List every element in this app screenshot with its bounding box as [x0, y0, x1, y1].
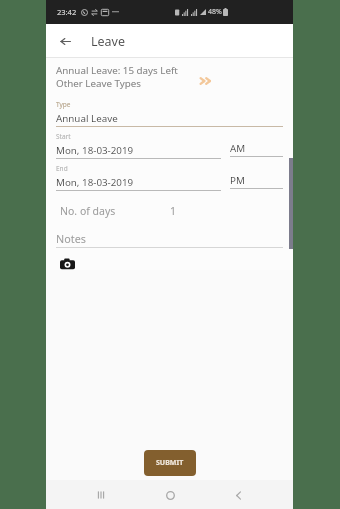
staticText: AM — [230, 142, 246, 155]
staticText: Type — [56, 100, 71, 109]
button[interactable]: Notes — [56, 231, 283, 248]
staticText: 48% — [208, 7, 222, 17]
staticText: Notes — [56, 231, 86, 246]
staticText: Annual Leave: 15 days Left — [56, 64, 178, 77]
button[interactable]: PM — [230, 164, 283, 189]
staticText: Annual Leave — [56, 112, 118, 125]
staticText: Leave — [91, 33, 126, 50]
staticText: No. of days — [60, 204, 116, 218]
staticText: 1 — [170, 204, 177, 218]
button[interactable]: Attach photo — [59, 256, 76, 273]
button[interactable]: End — [56, 164, 221, 191]
button[interactable]: Recents — [88, 482, 114, 508]
staticText: PM — [230, 174, 245, 187]
staticText: Mon, 18-03-2019 — [56, 144, 134, 157]
staticText: Start — [56, 132, 71, 141]
staticText: 23:42 — [57, 7, 77, 17]
button[interactable]: Other leave types — [199, 77, 213, 85]
button[interactable]: SUBMIT — [144, 450, 196, 476]
button[interactable]: Start — [56, 132, 221, 159]
button[interactable]: Type — [56, 100, 283, 127]
button[interactable]: Back — [53, 29, 77, 53]
button[interactable]: AM — [230, 132, 283, 157]
staticText: SUBMIT — [156, 458, 184, 468]
staticText: End — [56, 164, 68, 173]
button[interactable]: Home — [157, 482, 183, 508]
staticText: Other Leave Types — [56, 77, 142, 90]
staticText: Mon, 18-03-2019 — [56, 176, 134, 189]
button[interactable]: Back — [225, 482, 251, 508]
